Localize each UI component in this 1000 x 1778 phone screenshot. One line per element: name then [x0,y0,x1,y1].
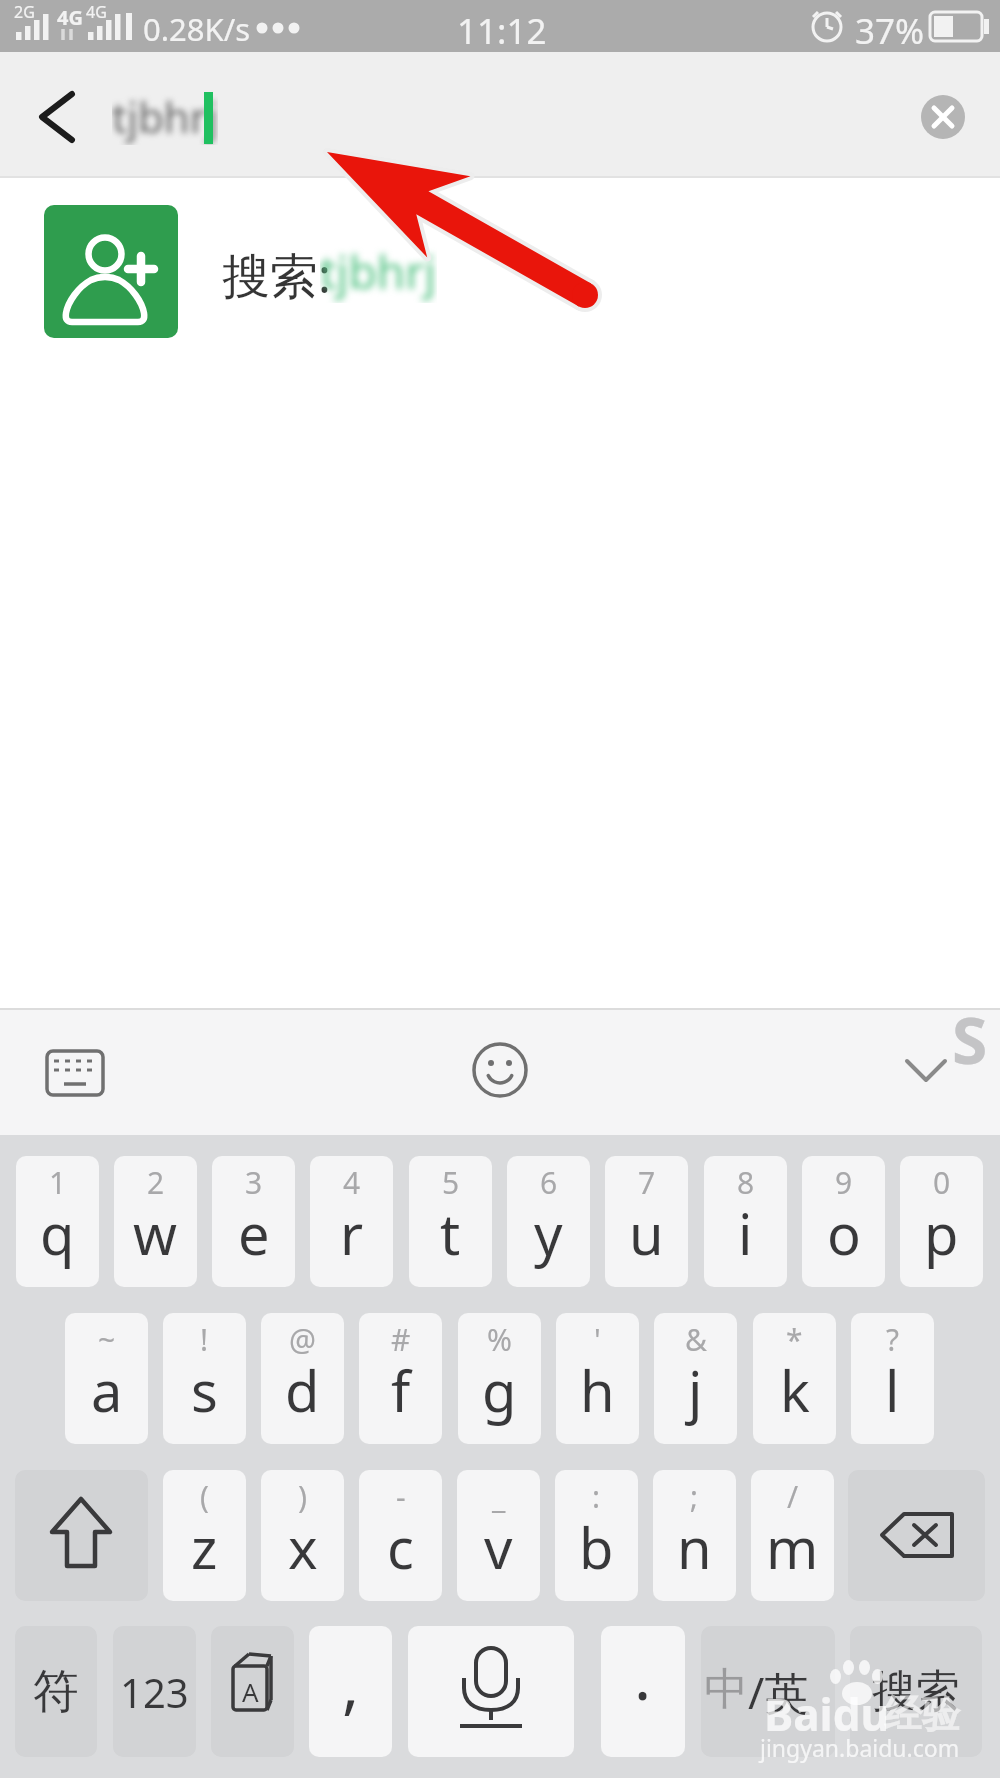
button[interactable]: # [359,1313,442,1444]
staticText: ) [298,1476,307,1517]
button[interactable]: 7 [605,1156,688,1287]
staticText: m [766,1509,819,1585]
staticText: 5 [442,1162,460,1203]
button[interactable]: A [211,1626,294,1757]
staticText: 4 [343,1162,361,1203]
staticText: f [391,1352,411,1428]
button[interactable]: _ [457,1470,540,1601]
staticText: tjbhrj [320,240,437,303]
staticText: . [634,1632,652,1719]
button[interactable]: ( [163,1470,246,1601]
staticText: ~ [98,1319,116,1360]
button[interactable]: - [359,1470,442,1601]
staticText: 符 [33,1663,79,1721]
button[interactable]: * [753,1313,836,1444]
staticText: h [580,1352,615,1428]
staticText: 3 [245,1162,263,1203]
staticText: u [629,1195,664,1271]
staticText: j [688,1352,703,1428]
staticText: 经验 [884,1690,960,1738]
button[interactable]: ? [851,1313,934,1444]
staticText: 搜索: [222,242,331,308]
button[interactable]: 8 [704,1156,787,1287]
staticText: b [579,1509,614,1585]
staticText: 37% [855,7,925,55]
staticText: % [487,1319,512,1360]
button[interactable]: 9 [802,1156,885,1287]
button[interactable] [30,1038,120,1108]
button[interactable]: 5 [409,1156,492,1287]
button[interactable]: 0 [900,1156,983,1287]
staticText: 2 [147,1162,165,1203]
button[interactable] [880,1033,970,1103]
button[interactable]: 1 [16,1156,99,1287]
staticText: l [885,1352,900,1428]
button[interactable]: ' [556,1313,639,1444]
button[interactable]: 4 [310,1156,393,1287]
button[interactable]: / [751,1470,834,1601]
staticText: 11:12 [457,7,547,55]
staticText: s [191,1352,218,1428]
staticText: 9 [835,1162,853,1203]
button[interactable]: ; [653,1470,736,1601]
staticText: & [685,1319,707,1360]
button[interactable]: 3 [212,1156,295,1287]
staticText: ! [200,1319,209,1360]
staticText: c [387,1509,414,1585]
staticText: , [342,1640,360,1727]
button[interactable] [408,1626,574,1757]
staticText: w [133,1195,178,1271]
button[interactable]: 搜索 [850,1626,982,1757]
staticText: 4G [86,1,107,23]
staticText: x [288,1509,318,1585]
button[interactable]: 中 [701,1626,835,1757]
button[interactable] [921,95,965,139]
button[interactable]: 符 [15,1626,97,1757]
staticText: 4G [57,4,83,31]
staticText: 123 [120,1665,189,1719]
button[interactable] [15,1470,148,1601]
button[interactable]: 123 [113,1626,196,1757]
staticText: 6 [540,1162,558,1203]
staticText: _ [492,1476,506,1517]
button[interactable]: @ [261,1313,344,1444]
staticText: p [924,1195,959,1271]
staticText: k [780,1352,810,1428]
staticText: ' [594,1319,601,1360]
button[interactable]: % [458,1313,541,1444]
button[interactable]: 搜索: [0,178,1000,376]
staticText: t [440,1195,461,1271]
staticText: Baidu [764,1684,890,1744]
button[interactable]: : [555,1470,638,1601]
button[interactable] [460,1034,540,1104]
button[interactable]: ~ [65,1313,148,1444]
button[interactable]: 6 [507,1156,590,1287]
staticText: v [484,1509,513,1585]
button[interactable]: . [601,1626,685,1757]
staticText: tjbhrj [112,88,218,145]
staticText: ( [200,1476,209,1517]
staticText: ; [690,1476,699,1517]
staticText: 8 [737,1162,755,1203]
staticText: r [340,1195,364,1271]
button[interactable]: & [654,1313,737,1444]
staticText: / [787,1476,799,1517]
staticText: jingyan.baidu.com [760,1732,960,1763]
button[interactable] [848,1470,985,1601]
button[interactable] [20,82,90,152]
staticText: @ [289,1319,316,1360]
staticText: y [534,1195,563,1271]
staticText: 中 [704,1662,748,1717]
staticText: * [786,1319,803,1360]
staticText: ? [886,1319,900,1360]
staticText: q [40,1195,75,1271]
button[interactable]: 2 [114,1156,197,1287]
button[interactable]: ! [163,1313,246,1444]
button[interactable]: ) [261,1470,344,1601]
staticText: o [827,1195,861,1271]
button[interactable]: , [309,1626,392,1757]
staticText: S [952,996,988,1083]
staticText: /英 [748,1662,809,1722]
staticText: 1 [49,1162,67,1203]
staticText: # [391,1319,411,1360]
